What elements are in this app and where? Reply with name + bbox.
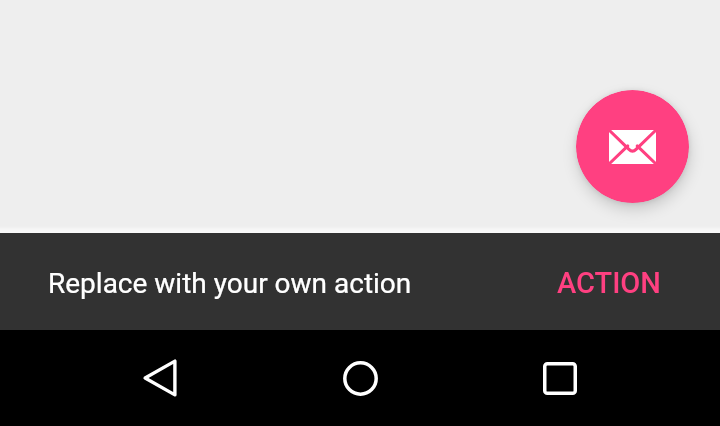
staticText: Replace with your own action	[48, 267, 412, 300]
staticText: ACTION	[557, 266, 661, 300]
button[interactable]: Home	[312, 330, 408, 426]
button[interactable]: ACTION	[557, 263, 720, 300]
button[interactable]: Recent apps	[512, 330, 608, 426]
button[interactable]: Compose email	[576, 90, 689, 203]
button[interactable]: Back	[112, 330, 208, 426]
